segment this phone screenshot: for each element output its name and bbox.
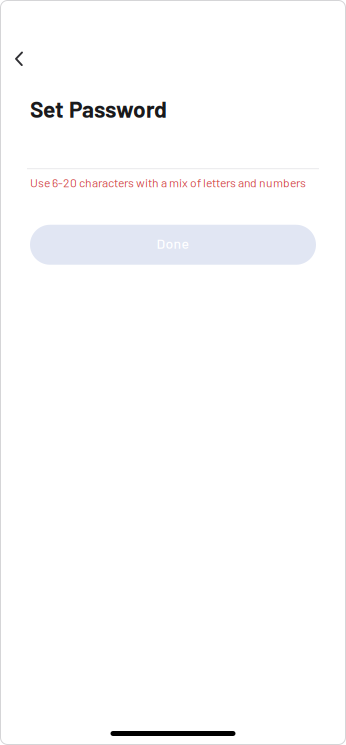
button[interactable]: Password [0,122,346,169]
button[interactable]: Back [6,46,32,72]
button[interactable]: Done [30,225,316,265]
staticText: Done [156,235,189,252]
staticText: Set Password [30,95,167,122]
staticText: Use 6-20 characters with a mix of letter… [30,175,306,190]
